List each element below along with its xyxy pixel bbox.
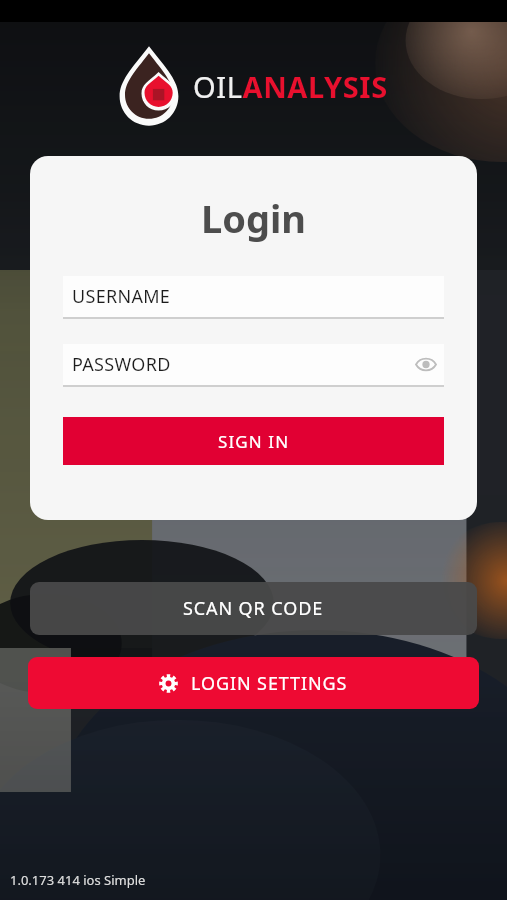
staticText: Login: [201, 192, 307, 244]
staticText: LOGIN SETTINGS: [191, 671, 348, 696]
button[interactable]: SIGN IN: [63, 417, 444, 465]
button[interactable]: PASSWORD: [63, 344, 444, 387]
staticText: SIGN IN: [218, 430, 290, 453]
staticText: USERNAME: [72, 284, 171, 309]
staticText: 1.0.173 414 ios Simple: [10, 871, 146, 889]
staticText: OILANALYSIS: [193, 67, 388, 106]
button[interactable]: SCAN QR CODE: [30, 582, 477, 635]
staticText: SCAN QR CODE: [183, 596, 324, 621]
other: Show password: [416, 358, 436, 371]
button[interactable]: Settings: [28, 657, 479, 709]
other: Settings: [159, 674, 178, 693]
button[interactable]: USERNAME: [63, 276, 444, 319]
staticText: PASSWORD: [72, 352, 171, 377]
